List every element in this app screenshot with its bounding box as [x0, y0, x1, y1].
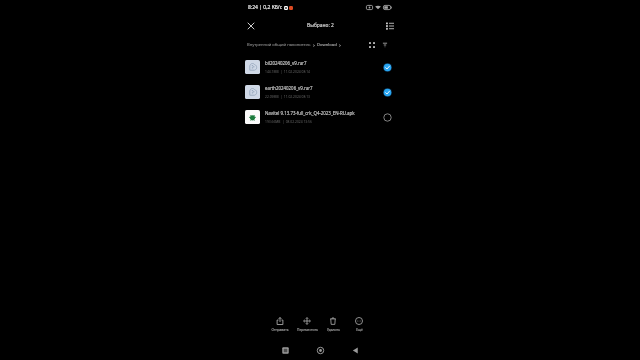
button[interactable]: Отправить: [266, 317, 294, 331]
button[interactable]: bil20240206_v9.rar7: [238, 54, 402, 79]
button[interactable]: Selected: [381, 61, 393, 73]
staticText: Отправить: [271, 327, 289, 331]
staticText: ›: [339, 41, 341, 49]
staticText: bil20240206_v9.rar7: [265, 60, 307, 66]
staticText: 193.66MB | 08.02.2024 13:56: [265, 119, 312, 123]
staticText: Удалить: [327, 327, 340, 331]
button[interactable]: earth20240206_v9.rar7: [238, 79, 402, 104]
staticText: 144.1MB | 11.02.2024 08:14: [265, 69, 310, 73]
staticText: Выбрано: 2: [307, 22, 334, 29]
staticText: earth20240206_v9.rar7: [265, 85, 313, 91]
button[interactable]: Удалить: [319, 317, 347, 331]
button[interactable]: Sort: [380, 40, 390, 50]
staticText: Внутренний общий накопитель: [247, 42, 311, 48]
button[interactable]: Внутренний общий накопитель: [247, 40, 341, 50]
button[interactable]: Home: [313, 343, 327, 357]
button[interactable]: Переместить: [293, 317, 321, 331]
staticText: Download: [317, 42, 337, 48]
button[interactable]: Not selected: [381, 111, 393, 123]
staticText: Navitel 9.13.73-full_crk_Q4-2023_EN-RU.a…: [265, 110, 355, 116]
button[interactable]: Select all: [383, 19, 396, 32]
button[interactable]: Navitel 9.13.73-full_crk_Q4-2023_EN-RU.a…: [238, 104, 402, 129]
button[interactable]: Ещё: [345, 317, 373, 331]
staticText: Переместить: [297, 327, 318, 331]
staticText: Ещё: [356, 327, 363, 331]
button[interactable]: Selected: [381, 86, 393, 98]
button[interactable]: Back: [348, 343, 362, 357]
button[interactable]: Recents: [278, 343, 292, 357]
button[interactable]: Close: [244, 19, 257, 32]
staticText: ›: [313, 41, 315, 49]
button[interactable]: Grid view: [367, 40, 377, 50]
staticText: 8:24 | 0,2 КБ/с: [248, 4, 283, 11]
staticText: 22.09MB | 11.02.2024 08:13: [265, 94, 310, 98]
